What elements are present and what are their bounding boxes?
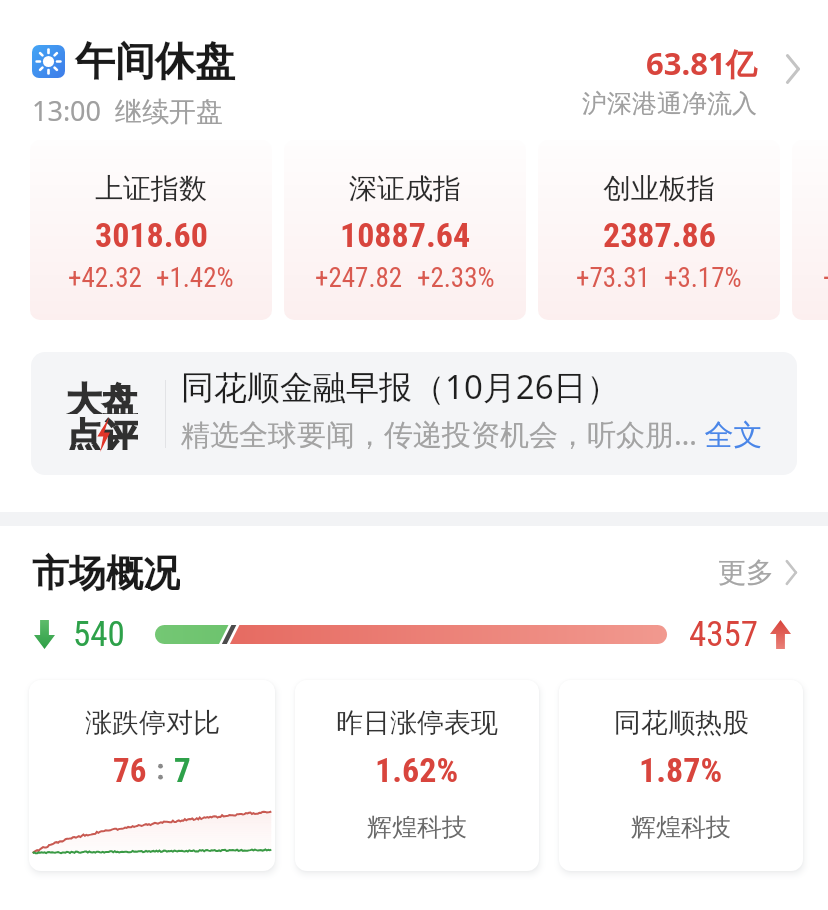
button[interactable]: 市场概况 <box>32 550 798 594</box>
staticText: 创业板指 <box>603 171 715 206</box>
button[interactable]: 创业板指 <box>538 140 780 320</box>
staticText: 沪深港通净流入 <box>582 88 757 119</box>
staticText: 同花顺金融早报（10月26日） <box>181 364 620 409</box>
staticText: 7 <box>174 751 191 790</box>
other: 查看详情 <box>757 0 828 132</box>
staticText: +1.42% <box>156 262 234 294</box>
button[interactable]: 恒生指数 <box>792 140 828 320</box>
button[interactable]: 午间休盘 <box>0 0 828 132</box>
staticText: 辉煌科技 <box>631 812 731 843</box>
staticText: +42.32 <box>68 262 142 294</box>
button[interactable]: 涨跌停对比 <box>29 680 275 871</box>
staticText: +3.17% <box>664 262 742 294</box>
button[interactable]: 昨日涨停表现 <box>295 680 539 871</box>
staticText: 昨日涨停表现 <box>336 706 498 740</box>
staticText: 大盘 <box>66 378 138 414</box>
staticText: 更多 <box>718 555 774 590</box>
button[interactable]: 上证指数 <box>30 140 272 320</box>
staticText: 2387.86 <box>603 215 716 255</box>
staticText: 精选全球要闻，传递投资机会，听众朋… <box>181 414 697 454</box>
staticText: 点评 <box>66 414 138 450</box>
staticText: 同花顺热股 <box>614 706 749 740</box>
staticText: +247.82 <box>315 262 403 294</box>
staticText: 全文 <box>697 414 763 454</box>
staticText: +73.31 <box>576 262 650 294</box>
staticText: 10887.64 <box>340 215 471 255</box>
staticText: 深证成指 <box>349 171 461 206</box>
staticText: +2.33% <box>417 262 495 294</box>
staticText: 1.62% <box>375 750 459 790</box>
staticText: 午间休盘 <box>75 36 235 86</box>
staticText: 63.81亿 <box>646 42 757 84</box>
staticText: +112.20 <box>823 262 828 294</box>
staticText: 3018.60 <box>95 215 208 255</box>
staticText: 540 <box>73 614 125 655</box>
staticText: 上证指数 <box>95 171 207 206</box>
staticText: 76 <box>113 751 147 790</box>
staticText: 1.87% <box>639 750 723 790</box>
staticText: 4357 <box>689 614 759 655</box>
button[interactable]: 深证成指 <box>284 140 526 320</box>
staticText: 13:00 继续开盘 <box>32 92 224 129</box>
staticText: 辉煌科技 <box>367 812 467 843</box>
staticText: 市场概况 <box>32 550 180 594</box>
button[interactable]: 大盘 <box>31 352 797 475</box>
button[interactable]: 同花顺热股 <box>559 680 803 871</box>
staticText: 涨跌停对比 <box>85 706 220 740</box>
